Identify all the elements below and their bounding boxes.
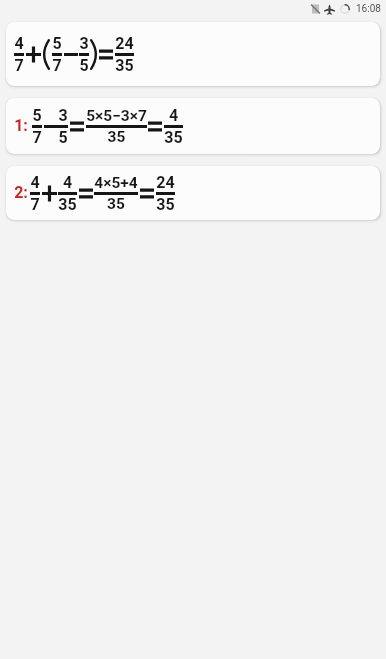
button[interactable]: 4	[6, 22, 380, 86]
staticText: 3	[79, 34, 89, 53]
staticText: 35	[86, 128, 147, 146]
staticText: 4	[30, 173, 40, 192]
staticText: 5×5−3×7	[86, 107, 147, 125]
staticText: 7	[52, 56, 62, 75]
staticText: 35	[156, 195, 175, 214]
staticText: 35	[164, 128, 183, 147]
staticText: 1:	[14, 116, 28, 135]
staticText: 4×5+4	[94, 174, 138, 192]
staticText: 2:	[14, 183, 28, 202]
staticText: 7	[14, 56, 24, 75]
staticText: 35	[94, 195, 138, 213]
staticText: 35	[115, 56, 134, 75]
staticText: 4	[58, 173, 77, 192]
staticText: 5	[52, 34, 62, 53]
staticText: 4	[164, 106, 183, 125]
staticText: 7	[30, 195, 40, 214]
staticText: 24	[156, 173, 175, 192]
staticText: 24	[115, 34, 134, 53]
staticText: 35	[58, 195, 77, 214]
staticText: 16:08	[356, 3, 381, 15]
staticText: 5	[32, 106, 42, 125]
button[interactable]: 2:	[6, 166, 380, 220]
staticText: 4	[14, 34, 24, 53]
staticText: 5	[58, 128, 68, 147]
button[interactable]: 1:	[6, 98, 380, 154]
staticText: 3	[58, 106, 68, 125]
staticText: 7	[32, 128, 42, 147]
staticText: 5	[79, 56, 89, 75]
